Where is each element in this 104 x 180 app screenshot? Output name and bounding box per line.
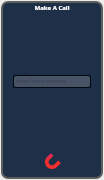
staticText: Make A Call — [3, 4, 101, 12]
button[interactable]: Call — [43, 153, 61, 171]
staticText: Enter Phone Number — [16, 78, 66, 85]
button[interactable]: Enter Phone Number — [14, 76, 90, 87]
